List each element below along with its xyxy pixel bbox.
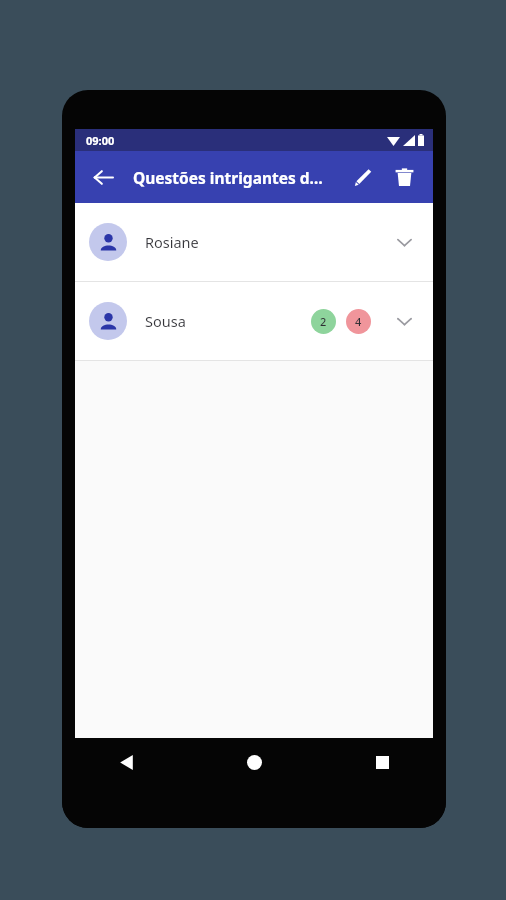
button[interactable]: Expand: [389, 227, 419, 257]
staticText: Questões intrigantes d…: [133, 167, 337, 188]
staticText: 2: [320, 314, 327, 329]
staticText: Sousa: [145, 311, 311, 331]
button[interactable]: Home: [190, 738, 318, 786]
staticText: 09:00: [86, 133, 115, 148]
button[interactable]: Edit: [341, 156, 383, 198]
button[interactable]: 2: [311, 309, 336, 334]
button[interactable]: Sousa: [75, 282, 433, 360]
button[interactable]: Delete: [383, 156, 425, 198]
button[interactable]: Rosiane: [75, 203, 433, 281]
staticText: 4: [355, 314, 362, 329]
staticText: Rosiane: [145, 232, 389, 252]
button[interactable]: Recent apps: [318, 738, 446, 786]
button[interactable]: Back: [62, 738, 190, 786]
button[interactable]: Expand: [389, 306, 419, 336]
button[interactable]: 4: [346, 309, 371, 334]
button[interactable]: Back: [81, 155, 125, 199]
